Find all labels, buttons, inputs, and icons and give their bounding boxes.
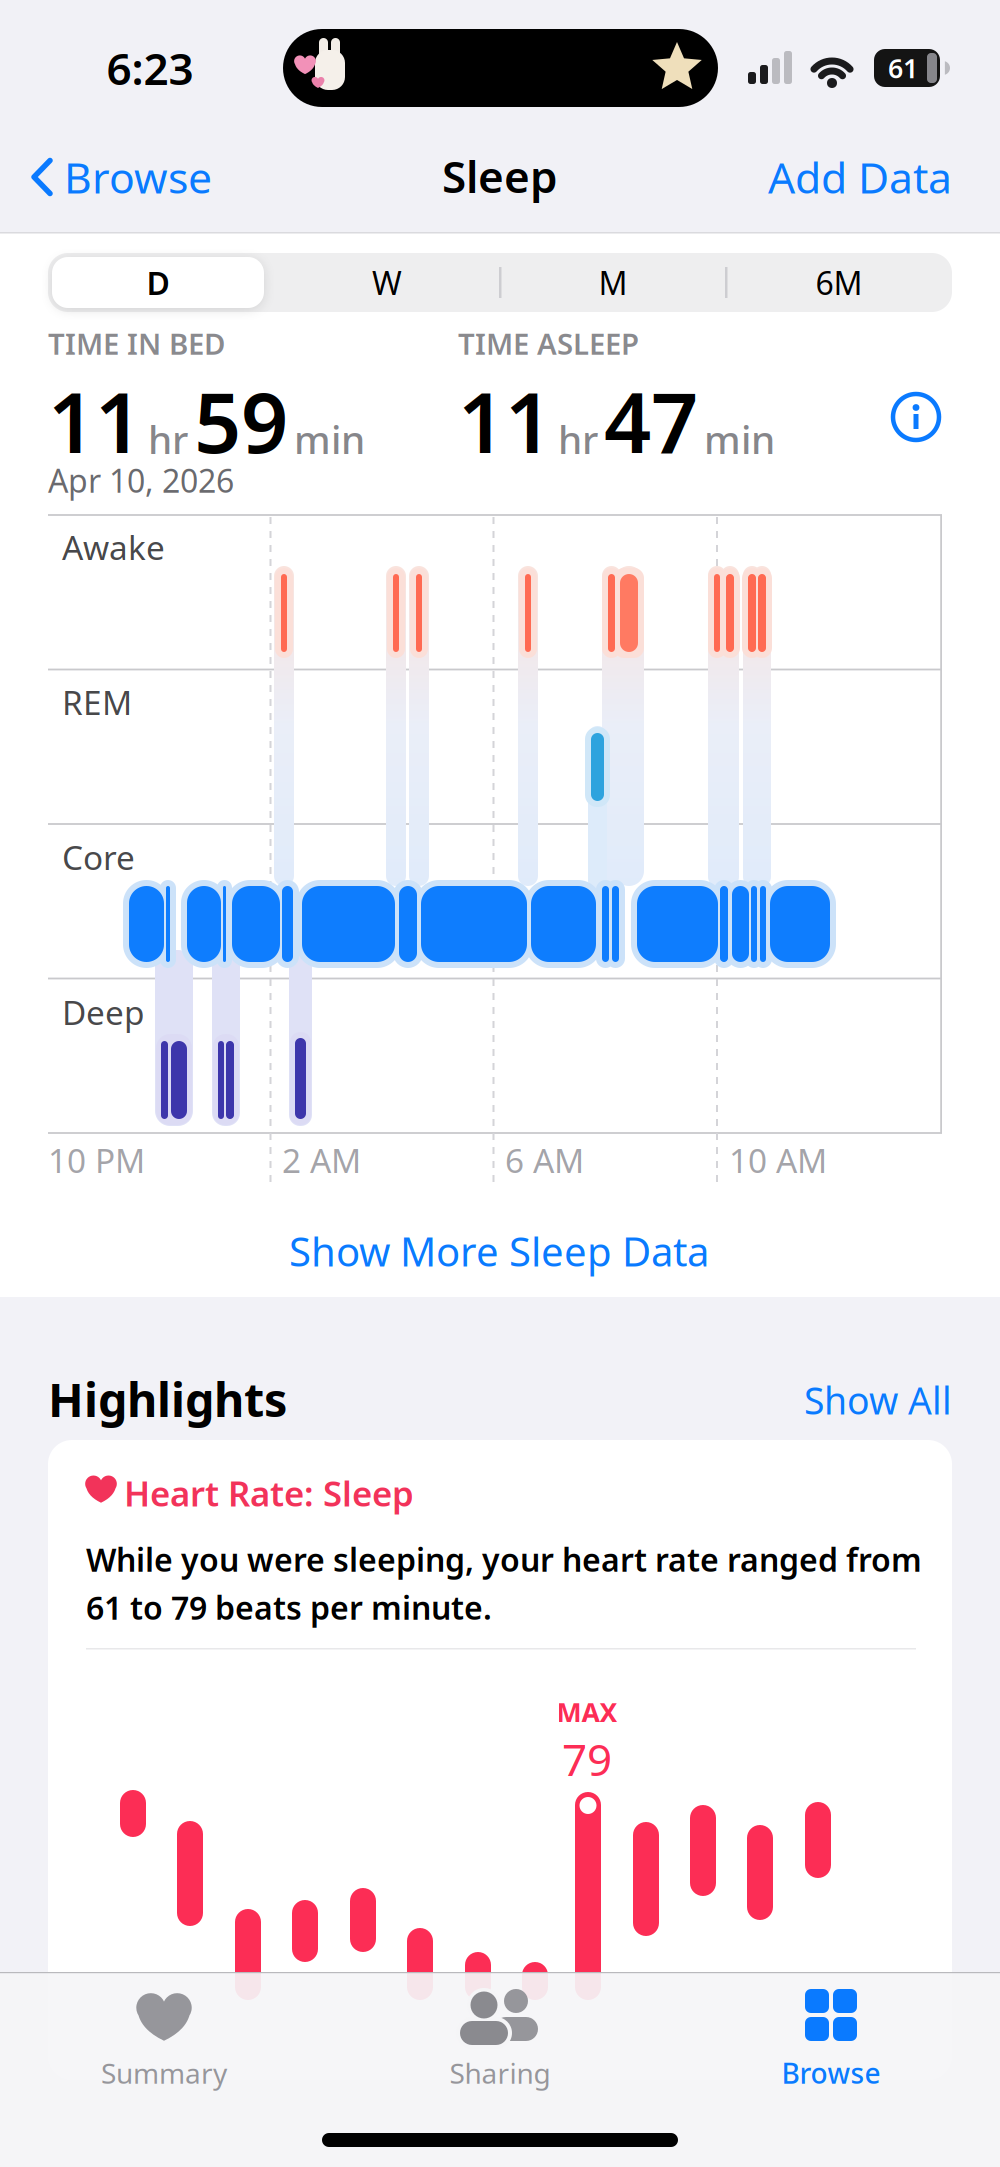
- staticText: TIME ASLEEP: [458, 324, 639, 363]
- staticText: 10 AM: [729, 1138, 827, 1182]
- staticText: min: [294, 413, 365, 465]
- button[interactable]: 6M: [734, 255, 944, 310]
- button[interactable]: Show All: [804, 1375, 952, 1425]
- button[interactable]: [48, 1440, 952, 2080]
- staticText: While you were sleeping, your heart rate…: [86, 1538, 922, 1580]
- staticText: Awake: [62, 525, 165, 569]
- staticText: Show More Sleep Data: [289, 1224, 709, 1277]
- staticText: Core: [62, 835, 135, 879]
- staticText: 59: [194, 366, 288, 476]
- staticText: Show All: [804, 1375, 952, 1425]
- staticText: min: [704, 413, 775, 465]
- staticText: 79: [562, 1730, 612, 1788]
- staticText: 47: [604, 366, 698, 476]
- staticText: TIME IN BED: [48, 324, 225, 363]
- staticText: 61: [888, 50, 918, 86]
- staticText: REM: [62, 680, 132, 724]
- staticText: MAX: [556, 1694, 617, 1730]
- button[interactable]: Browse: [721, 1989, 941, 2099]
- staticText: Summary: [101, 2054, 227, 2092]
- staticText: Sharing: [449, 2054, 550, 2092]
- button[interactable]: M: [508, 255, 718, 310]
- staticText: 6:23: [106, 39, 193, 97]
- staticText: Browse: [64, 149, 212, 205]
- staticText: M: [598, 261, 627, 304]
- staticText: hr: [148, 413, 188, 465]
- button[interactable]: Show More Sleep Data: [289, 1224, 709, 1277]
- staticText: W: [372, 261, 402, 304]
- staticText: Sleep: [442, 147, 558, 205]
- staticText: 2 AM: [282, 1138, 361, 1182]
- staticText: 6M: [815, 261, 862, 304]
- staticText: Add Data: [768, 149, 952, 205]
- staticText: 11: [458, 366, 552, 476]
- staticText: D: [146, 261, 169, 304]
- staticText: 11: [48, 366, 142, 476]
- staticText: hr: [558, 413, 598, 465]
- staticText: Highlights: [48, 1368, 287, 1430]
- button[interactable]: Add Data: [768, 149, 952, 205]
- staticText: 61 to 79 beats per minute.: [86, 1586, 492, 1628]
- button[interactable]: D: [52, 257, 264, 308]
- staticText: Deep: [62, 990, 145, 1034]
- button[interactable]: Summary: [54, 1989, 274, 2099]
- button[interactable]: W: [282, 255, 492, 310]
- button[interactable]: About Sleep: [893, 394, 939, 440]
- staticText: Apr 10, 2026: [48, 459, 234, 501]
- staticText: Heart Rate: Sleep: [124, 1470, 414, 1516]
- staticText: 10 PM: [48, 1138, 145, 1182]
- staticText: 6 AM: [505, 1138, 584, 1182]
- button[interactable]: Browse: [30, 149, 212, 205]
- staticText: Browse: [781, 2054, 880, 2092]
- button[interactable]: Sharing: [390, 1989, 610, 2099]
